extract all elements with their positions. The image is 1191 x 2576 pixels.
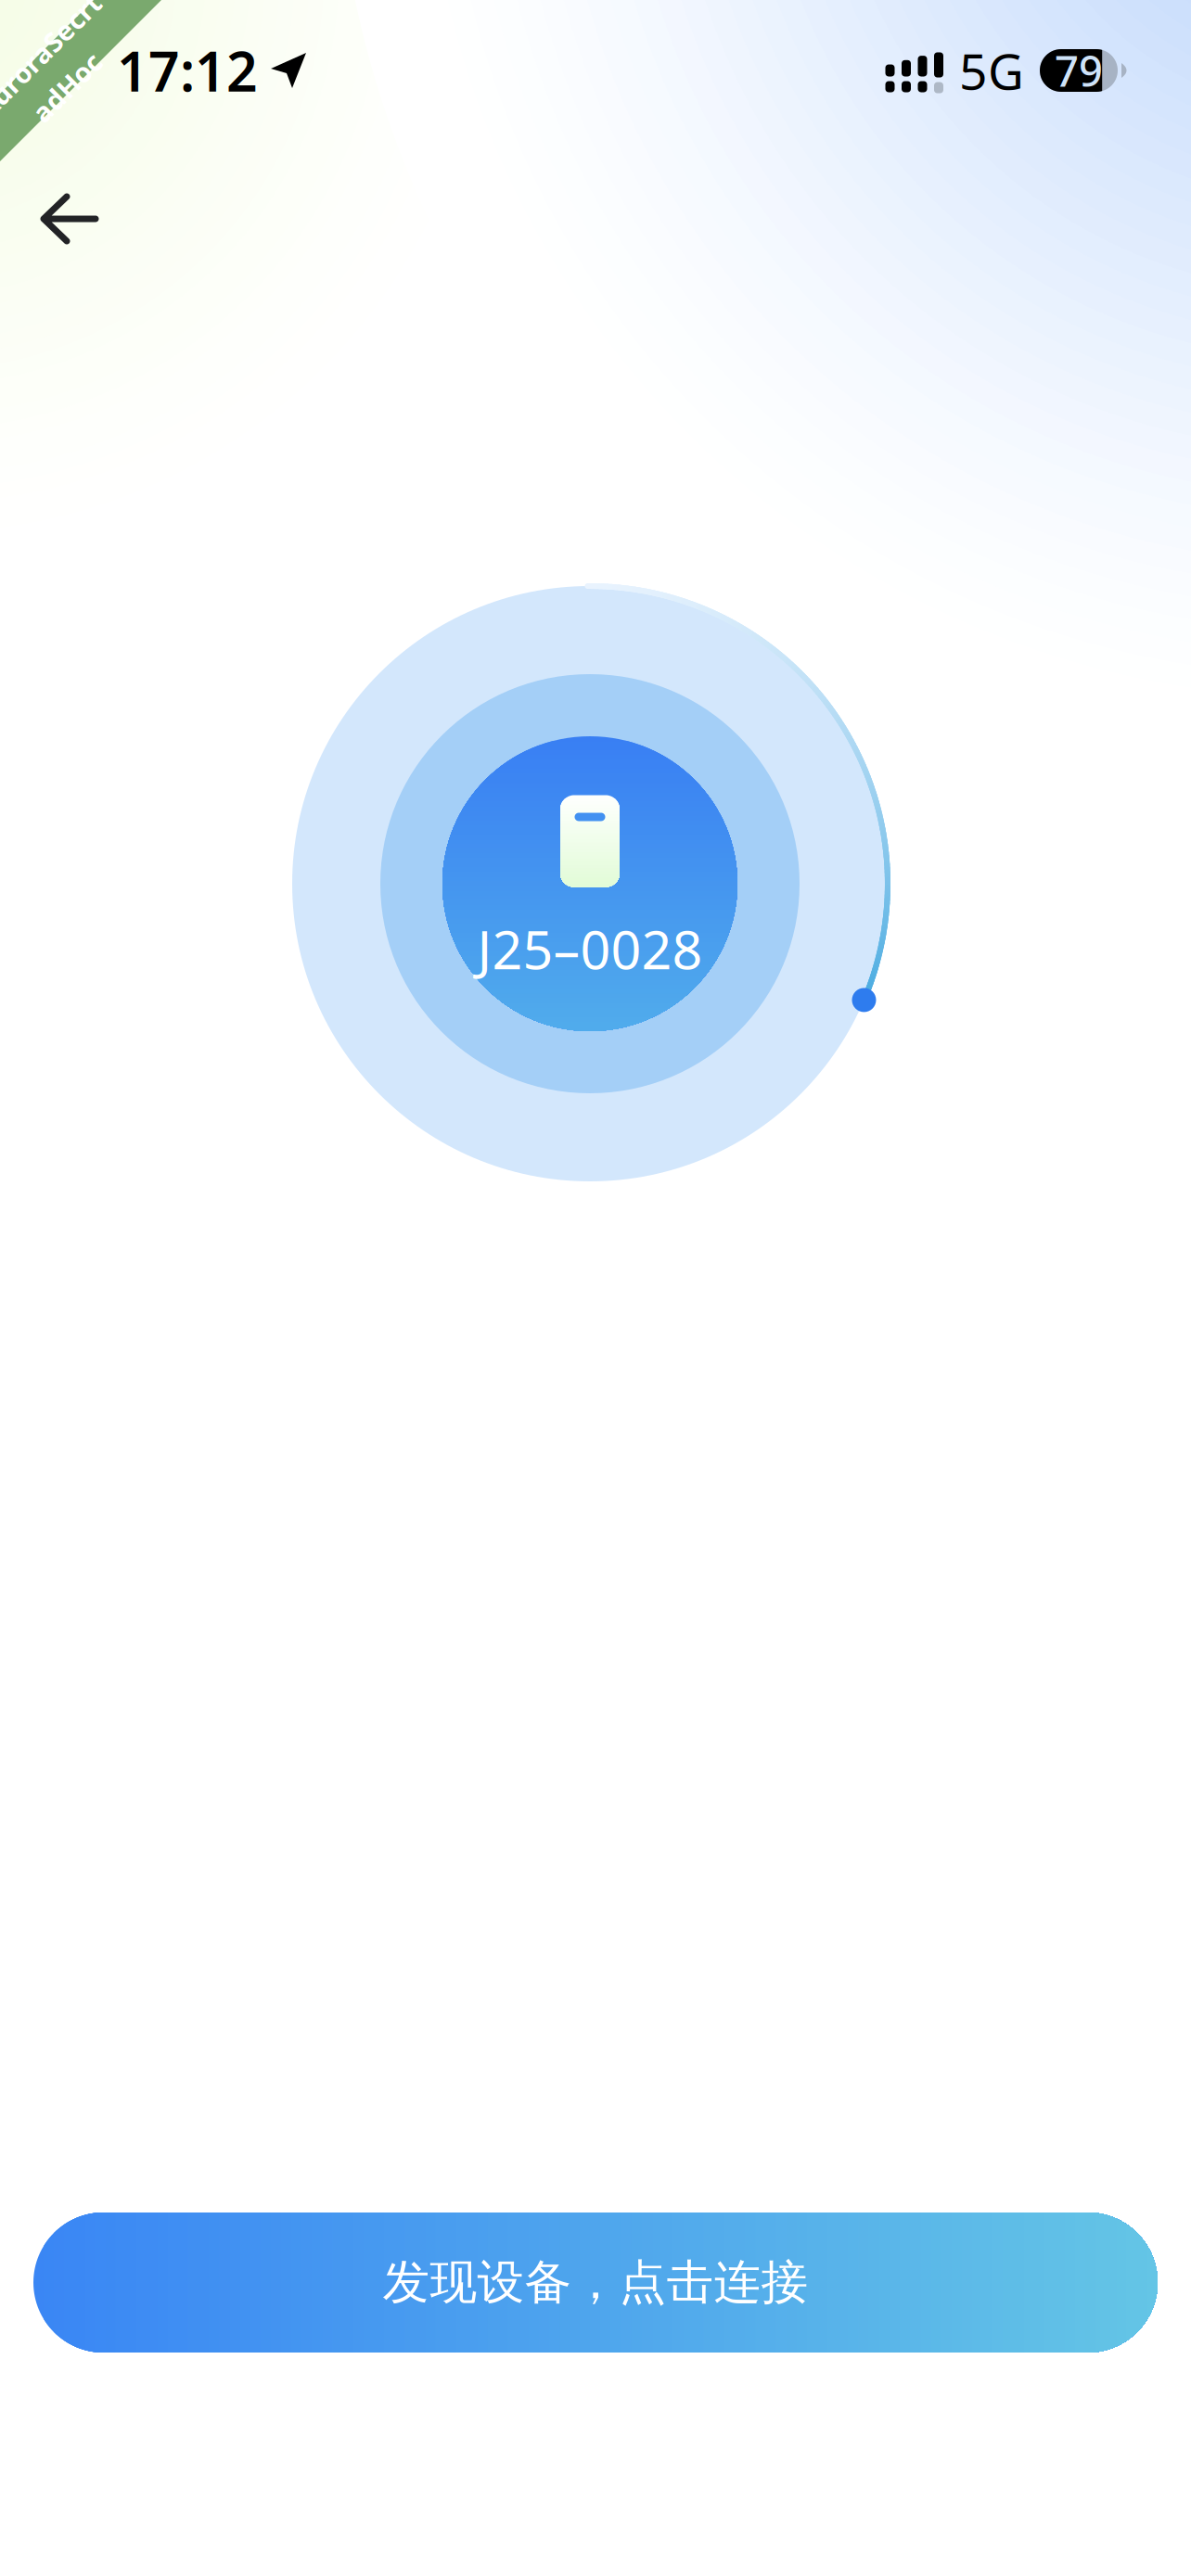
- staticText: J25–0028: [477, 913, 703, 984]
- button[interactable]: Back: [16, 147, 123, 255]
- staticText: 17:12: [117, 34, 258, 107]
- button[interactable]: 发现设备，点击连接: [33, 2213, 1158, 2353]
- staticText: AuroraSecrt: [0, 38, 121, 74]
- staticText: 5G: [959, 38, 1024, 103]
- staticText: 发现设备，点击连接: [383, 2254, 808, 2311]
- staticText: 79: [1055, 43, 1103, 98]
- staticText: adHoc: [24, 69, 109, 105]
